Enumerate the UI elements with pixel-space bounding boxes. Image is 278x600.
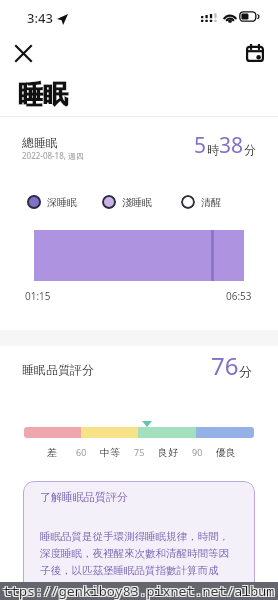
staticText: 清醒: [201, 196, 221, 209]
staticText: 5: [194, 131, 207, 160]
staticText: ttps://genkiboy83.pixnet.net/album: [2, 581, 274, 599]
staticText: 01:15: [25, 289, 51, 303]
staticText: 睡眠品質是從手環測得睡眠規律，時間，深度睡眠，夜裡醒來次數和清醒時間等因子後，以…: [40, 530, 232, 577]
staticText: 90: [192, 446, 203, 458]
staticText: 38: [219, 131, 244, 160]
staticText: 75: [134, 446, 145, 458]
staticText: 3:43: [27, 9, 53, 27]
staticText: ttps://genkiboy83.pixnet.net/album: [4, 581, 276, 599]
staticText: 睡眠品質評分: [22, 362, 94, 377]
staticText: 睡眠: [18, 79, 68, 110]
staticText: ttps://genkiboy83.pixnet.net/album: [3, 582, 275, 600]
button[interactable]: Close: [7, 37, 39, 69]
staticText: 分: [244, 142, 256, 157]
staticText: 了解睡眠品質評分: [40, 490, 128, 504]
button[interactable]: 清醒: [181, 195, 221, 209]
staticText: 良好: [158, 446, 178, 459]
staticText: 時: [207, 142, 219, 157]
staticText: 60: [76, 446, 87, 458]
staticText: ttps://genkiboy83.pixnet.net/album: [2, 583, 274, 600]
staticText: 分: [239, 363, 252, 379]
staticText: 06:53: [226, 289, 252, 303]
staticText: 深睡眠: [47, 196, 77, 209]
button[interactable]: 深睡眠: [27, 195, 77, 209]
staticText: 優良: [216, 446, 236, 459]
staticText: 2022-08-18, 週四: [22, 150, 84, 161]
button[interactable]: 淺睡眠: [102, 195, 152, 209]
staticText: 差: [47, 446, 57, 459]
staticText: ttps://genkiboy83.pixnet.net/album: [4, 583, 276, 600]
staticText: 中等: [100, 446, 120, 459]
staticText: 76: [211, 349, 239, 382]
button[interactable]: Calendar: [238, 36, 271, 69]
staticText: 總睡眠: [22, 135, 58, 150]
staticText: 淺睡眠: [122, 196, 152, 209]
